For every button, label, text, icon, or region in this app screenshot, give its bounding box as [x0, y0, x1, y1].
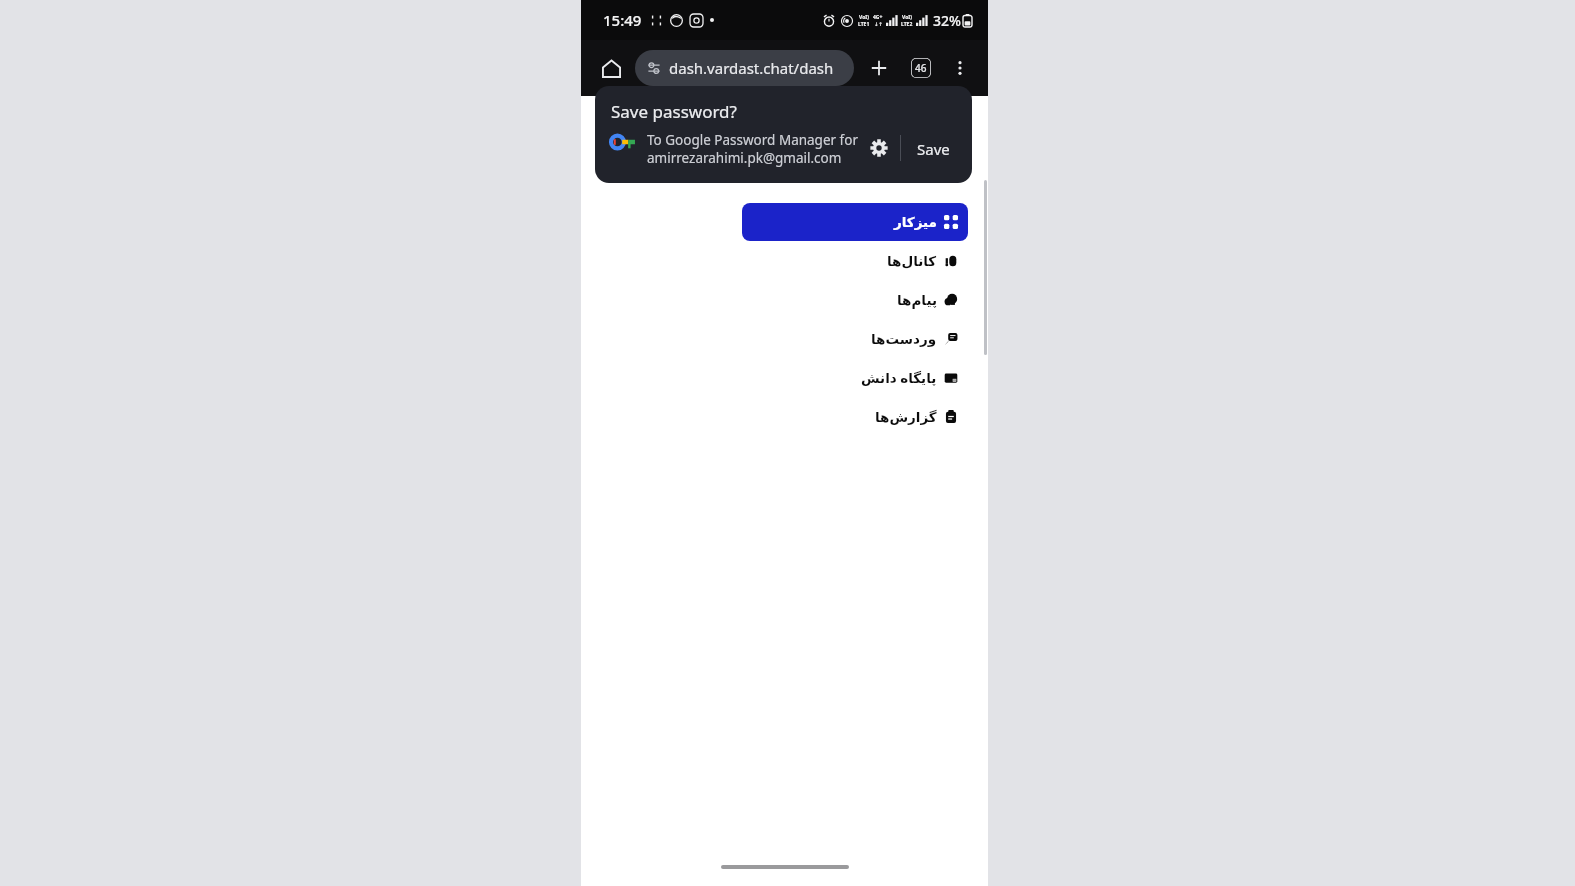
button[interactable]: پایگاه دانش	[742, 358, 968, 397]
staticText: کانال‌ها	[887, 253, 937, 269]
staticText: To Google Password Manager for amirrezar…	[647, 131, 858, 167]
staticText: میزکار	[894, 214, 937, 230]
staticText: 4G+	[873, 14, 883, 21]
staticText: LTE2	[901, 21, 913, 28]
staticText: پایگاه دانش	[861, 369, 937, 387]
staticText: 15:49	[603, 10, 642, 30]
staticText: 32%	[933, 11, 961, 30]
staticText: dash.vardast.chat/dash	[669, 58, 834, 78]
staticText: 46	[915, 61, 927, 75]
button[interactable]: Home	[595, 52, 627, 84]
staticText: VoI)	[902, 14, 912, 21]
staticText: وردست‌ها	[871, 331, 937, 347]
staticText: VoI)	[859, 14, 869, 21]
button[interactable]: Tabs: 46	[906, 53, 936, 83]
staticText: Save	[917, 139, 950, 159]
button[interactable]: More options	[946, 54, 974, 82]
staticText: LTE1	[858, 21, 870, 28]
button[interactable]: New tab	[864, 53, 894, 83]
button[interactable]: وردست‌ها	[742, 319, 968, 358]
button[interactable]: dash.vardast.chat/dash	[635, 50, 854, 86]
button[interactable]: کانال‌ها	[742, 241, 968, 280]
staticText: گزارش‌ها	[875, 409, 937, 425]
button[interactable]: Save	[909, 133, 958, 165]
button[interactable]: گزارش‌ها	[742, 397, 968, 436]
staticText: پیام‌ها	[897, 292, 937, 308]
button[interactable]: میزکار	[742, 203, 968, 241]
staticText: ↓↑	[874, 21, 883, 27]
button[interactable]: Settings	[864, 133, 894, 163]
button[interactable]: پیام‌ها	[742, 280, 968, 319]
staticText: Save password?	[611, 100, 737, 123]
